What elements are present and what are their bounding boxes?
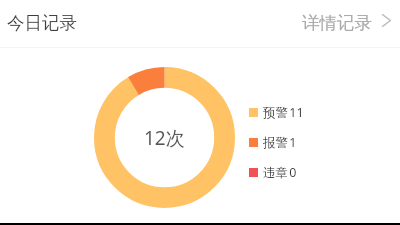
button[interactable]: 违章 0 xyxy=(249,164,297,181)
staticText: 12次 xyxy=(144,125,185,151)
staticText: 违章 0 xyxy=(263,164,297,181)
staticText: 详情记录 xyxy=(302,12,372,34)
button[interactable]: 详情记录 xyxy=(292,0,400,47)
staticText: 预警 11 xyxy=(263,104,304,121)
staticText: 报警 1 xyxy=(263,134,297,151)
button[interactable]: 预警 11 xyxy=(249,104,304,121)
button[interactable]: 报警 1 xyxy=(249,134,297,151)
other: 详情记录 xyxy=(382,14,391,27)
staticText: 今日记录 xyxy=(7,12,77,34)
